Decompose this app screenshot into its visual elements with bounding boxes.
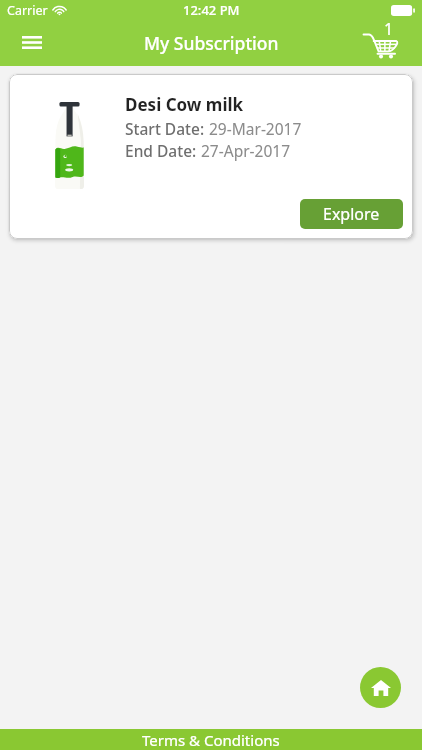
button[interactable]: Cart	[363, 18, 399, 58]
button[interactable]: Explore	[300, 199, 403, 229]
staticText: Desi Cow milk	[125, 93, 244, 116]
staticText: My Subscription	[144, 31, 279, 55]
staticText: Carrier	[7, 2, 48, 19]
button[interactable]: Terms & Conditions	[0, 729, 422, 750]
button[interactable]: Menu	[11, 22, 53, 64]
staticText: Explore	[323, 203, 380, 225]
staticText: End Date:	[125, 140, 201, 161]
staticText: 1	[384, 18, 394, 40]
staticText: 29-Mar-2017	[209, 118, 302, 139]
staticText: 12:42 PM	[183, 1, 240, 19]
staticText: Start Date:	[125, 118, 209, 139]
staticText: Terms & Conditions	[142, 730, 280, 750]
staticText: 27-Apr-2017	[201, 140, 291, 161]
button[interactable]: Home	[360, 667, 401, 708]
button[interactable]: Desi Cow milk	[9, 74, 413, 239]
